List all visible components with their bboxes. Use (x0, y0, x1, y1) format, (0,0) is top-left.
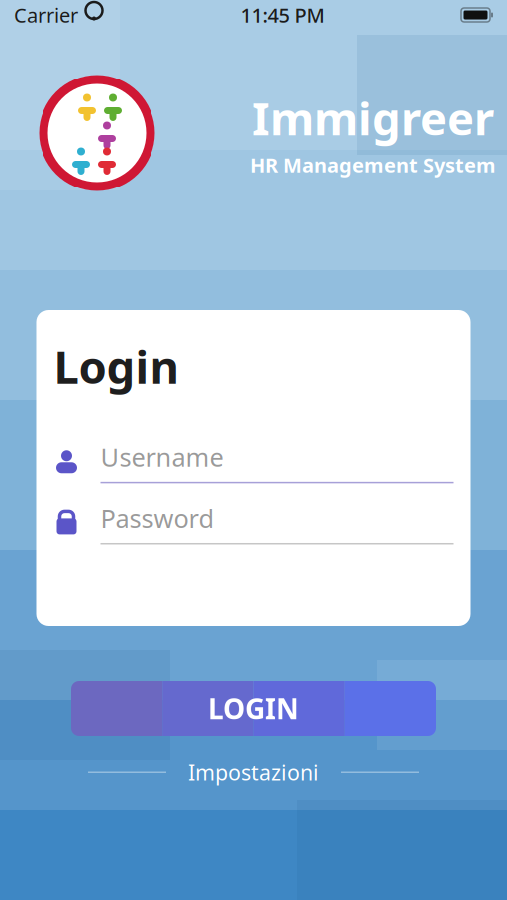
staticText: Impostazioni (188, 758, 319, 786)
staticText: Password (100, 501, 214, 535)
button[interactable]: Password (53, 501, 453, 544)
staticText: LOGIN (208, 690, 299, 727)
staticText: Login (53, 336, 178, 396)
button[interactable]: Username (53, 440, 453, 483)
staticText: Immigreer (252, 88, 494, 148)
staticText: Username (100, 440, 223, 474)
staticText: HR Management System (250, 152, 496, 178)
staticText: 11:45 PM (240, 2, 324, 28)
staticText: Carrier (14, 2, 78, 28)
button[interactable]: Impostazioni (88, 758, 419, 786)
button[interactable]: LOGIN (71, 681, 436, 736)
